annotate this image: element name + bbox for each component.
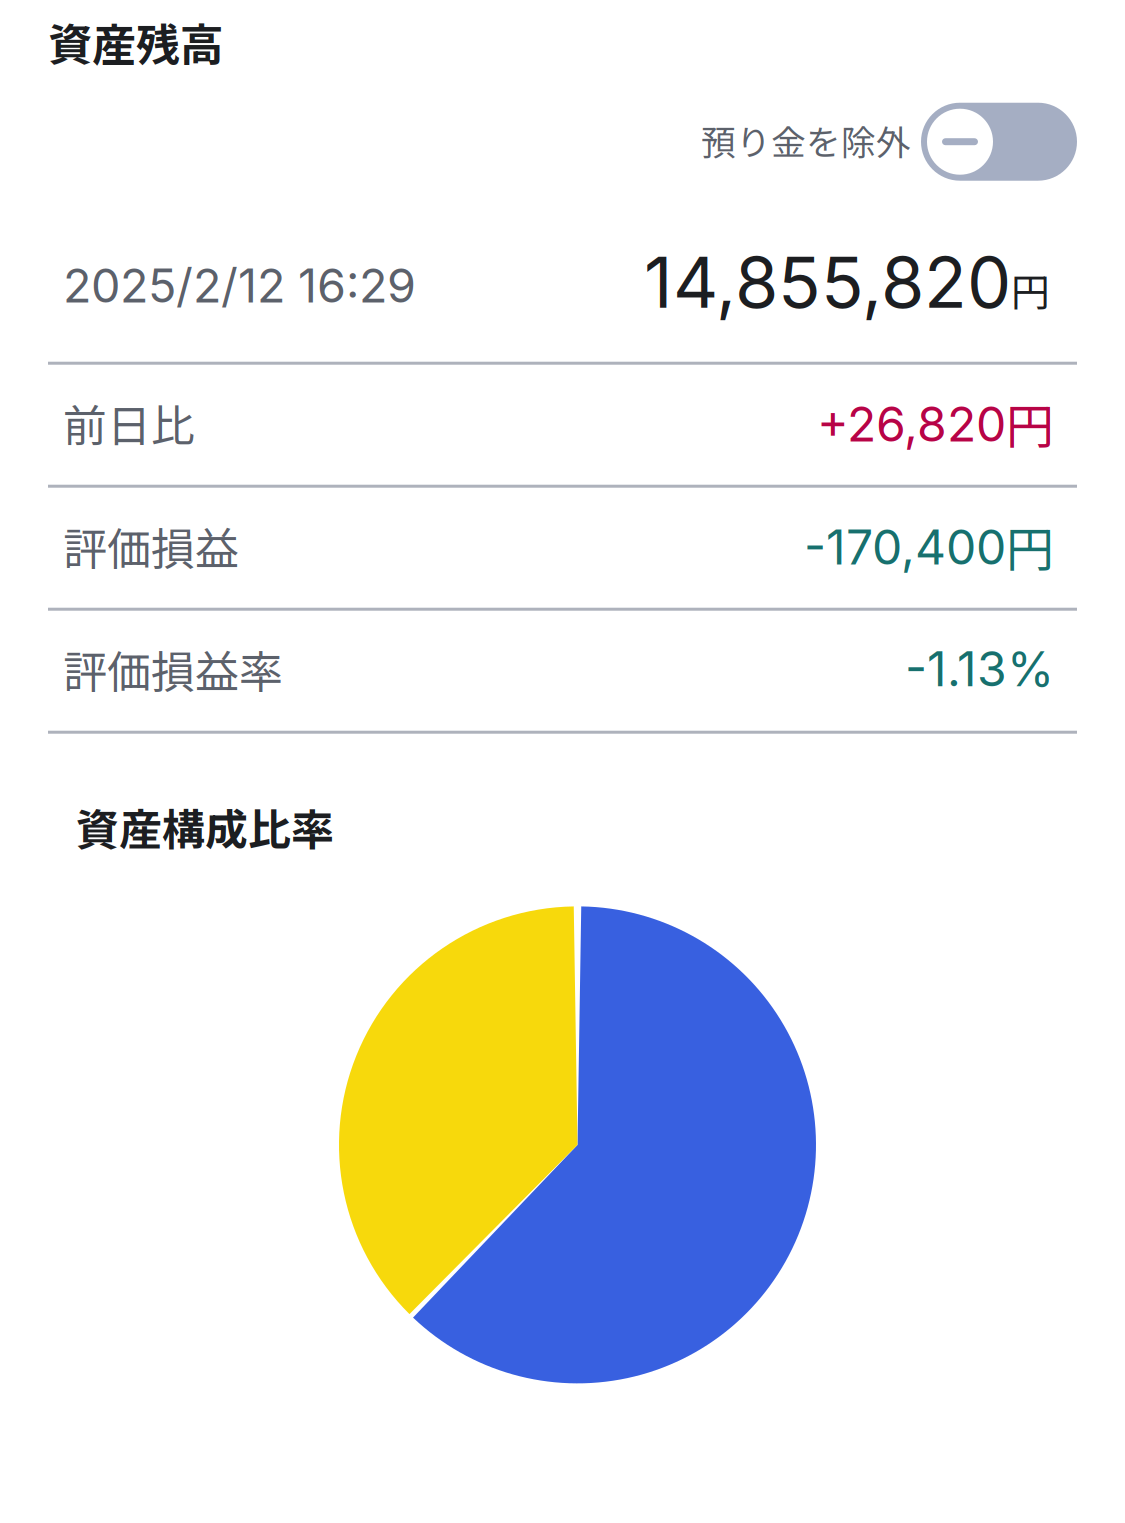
button[interactable]: 預り金を除外 xyxy=(0,74,1125,212)
staticText: 円 xyxy=(1011,262,1050,318)
staticText: 前日比 xyxy=(63,391,195,455)
staticText: 14,855,820 xyxy=(644,240,1011,325)
staticText: 資産残高 xyxy=(48,10,224,74)
staticText: 評価損益率 xyxy=(63,637,283,701)
staticText: 2025/2/12 16:29 xyxy=(63,257,416,314)
staticText: +26,820円 xyxy=(817,388,1054,457)
staticText: 預り金を除外 xyxy=(701,115,911,165)
staticText: -170,400円 xyxy=(804,511,1054,580)
staticText: 資産構成比率 xyxy=(76,796,334,858)
staticText: -1.13% xyxy=(905,640,1054,698)
staticText: 評価損益 xyxy=(63,514,239,578)
